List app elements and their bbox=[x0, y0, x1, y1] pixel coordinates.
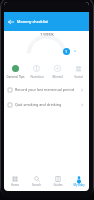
staticText: Search bbox=[32, 183, 41, 187]
button[interactable]: Mental bbox=[47, 63, 68, 86]
button[interactable]: Week 1 bbox=[63, 48, 70, 55]
button[interactable]: Record your last menstrual period bbox=[4, 82, 89, 97]
staticText: Quit smoking and drinking bbox=[15, 102, 62, 107]
staticText: Nutrition bbox=[30, 75, 44, 79]
staticText: My Baby bbox=[73, 183, 85, 187]
staticText: Home bbox=[11, 183, 19, 187]
staticText: Social bbox=[74, 75, 83, 79]
button[interactable]: Nutrition bbox=[26, 63, 47, 86]
staticText: Guides bbox=[53, 183, 63, 187]
staticText: 1 WEEK bbox=[40, 32, 54, 37]
staticText: Mommy checklist bbox=[17, 19, 48, 24]
button[interactable]: General Tips bbox=[4, 63, 26, 86]
button[interactable]: Social bbox=[68, 63, 89, 86]
staticText: General Tips bbox=[6, 75, 25, 79]
button[interactable]: Search bbox=[26, 171, 47, 191]
button[interactable]: Home bbox=[4, 171, 26, 191]
staticText: Record your last menstrual period bbox=[15, 87, 75, 92]
button[interactable]: Guides bbox=[47, 171, 68, 191]
button[interactable]: Back bbox=[4, 12, 17, 31]
button[interactable]: Quit smoking and drinking bbox=[4, 97, 89, 112]
button[interactable]: My Baby bbox=[68, 171, 89, 191]
staticText: 1 bbox=[65, 49, 68, 54]
staticText: Mental bbox=[52, 75, 63, 79]
